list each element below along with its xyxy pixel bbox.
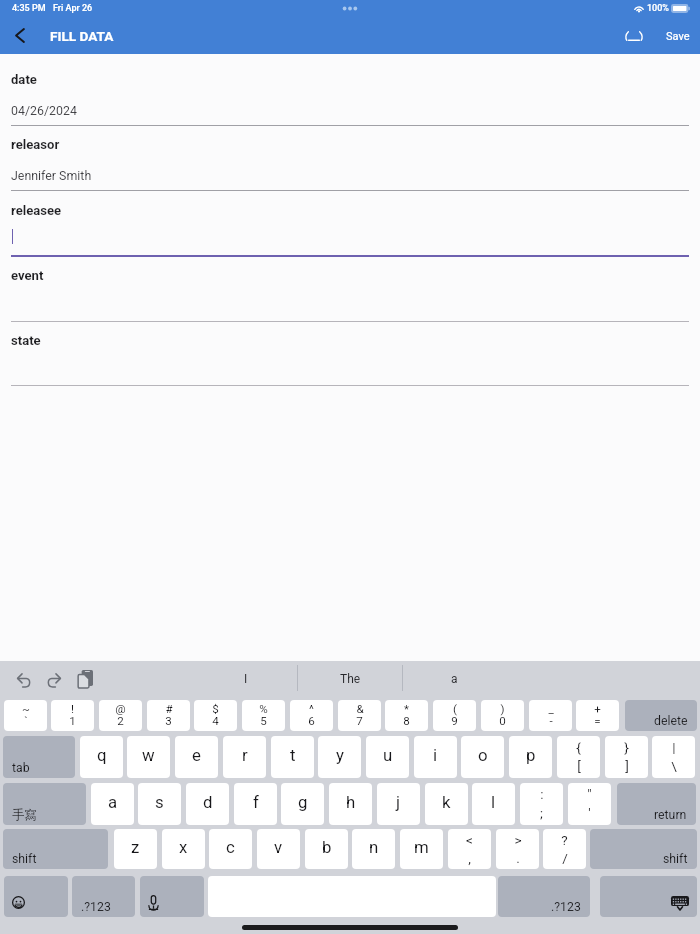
staticText: 手寫 <box>12 807 37 822</box>
button[interactable]: t <box>271 736 314 778</box>
button[interactable]: a <box>409 661 499 697</box>
button[interactable]: & <box>338 700 381 731</box>
button[interactable]: Paste <box>73 667 97 691</box>
button[interactable]: e <box>175 736 218 778</box>
button[interactable]: The <box>305 661 395 697</box>
staticText: 8 <box>403 714 410 728</box>
staticText: 4:35 PM <box>12 3 46 14</box>
button[interactable]: a <box>91 783 134 825</box>
button[interactable]: | <box>652 736 695 778</box>
staticText: state <box>11 333 41 348</box>
button[interactable]: date <box>11 72 689 129</box>
button[interactable]: c <box>209 829 252 869</box>
button[interactable]: g <box>281 783 324 825</box>
button[interactable]: tab <box>3 736 75 778</box>
button[interactable]: b <box>305 829 348 869</box>
staticText: v <box>274 837 283 857</box>
staticText: & <box>356 702 364 716</box>
button[interactable]: * <box>385 700 428 731</box>
staticText: shift <box>663 852 688 866</box>
button[interactable]: Hide keyboard <box>600 876 697 917</box>
button[interactable]: f <box>234 783 277 825</box>
staticText: b <box>322 837 332 857</box>
staticText: I <box>244 672 248 686</box>
button[interactable]: s <box>138 783 181 825</box>
button[interactable]: # <box>147 700 190 731</box>
staticText: releasee <box>11 203 62 218</box>
button[interactable]: ) <box>481 700 524 731</box>
button[interactable]: w <box>127 736 170 778</box>
button[interactable]: ~ <box>4 700 47 731</box>
button[interactable]: : <box>520 783 563 825</box>
button[interactable]: + <box>576 700 619 731</box>
button[interactable]: Hide keyboard <box>618 22 650 50</box>
button[interactable]: Dictation <box>140 876 204 917</box>
staticText: . <box>516 850 520 866</box>
button[interactable]: .?123 <box>72 876 135 917</box>
button[interactable]: Back <box>6 21 34 49</box>
button[interactable]: l <box>472 783 515 825</box>
button[interactable]: I <box>201 661 291 697</box>
staticText: ( <box>453 702 457 716</box>
button[interactable]: } <box>605 736 648 778</box>
staticText: Jennifer Smith <box>11 168 92 183</box>
staticText: 7 <box>356 714 363 728</box>
button[interactable]: u <box>366 736 409 778</box>
button[interactable]: n <box>352 829 395 869</box>
staticText: l <box>491 792 496 812</box>
other: Hide keyboard <box>671 896 689 910</box>
button[interactable]: ^ <box>290 700 333 731</box>
button[interactable]: shift <box>3 829 108 869</box>
button[interactable]: k <box>425 783 468 825</box>
staticText: 0 <box>499 714 506 728</box>
staticText: * <box>404 702 409 716</box>
button[interactable]: event <box>11 268 689 325</box>
button[interactable]: ? <box>543 829 586 869</box>
button[interactable]: releasee <box>11 203 689 259</box>
button[interactable]: $ <box>194 700 237 731</box>
button[interactable]: q <box>80 736 123 778</box>
button[interactable]: FILL DATA <box>44 22 120 50</box>
staticText: c <box>226 837 235 857</box>
button[interactable]: ! <box>51 700 94 731</box>
button[interactable]: z <box>114 829 157 869</box>
staticText: FILL DATA <box>50 28 114 44</box>
button[interactable]: y <box>318 736 361 778</box>
button[interactable]: > <box>496 829 539 869</box>
button[interactable]: return <box>617 783 696 825</box>
button[interactable]: releasor <box>11 137 689 194</box>
button[interactable]: h <box>329 783 372 825</box>
button[interactable]: Redo <box>42 668 66 692</box>
button[interactable]: v <box>257 829 300 869</box>
button[interactable]: Save <box>660 22 695 50</box>
button[interactable]: delete <box>625 700 697 731</box>
staticText: t <box>290 745 296 765</box>
staticText: w <box>142 745 155 765</box>
button[interactable]: ( <box>433 700 476 731</box>
button[interactable]: Emoji <box>4 876 68 917</box>
button[interactable]: o <box>461 736 504 778</box>
button[interactable]: 手寫 <box>3 783 86 825</box>
button[interactable]: state <box>11 333 689 389</box>
staticText: a <box>108 792 118 812</box>
button[interactable]: i <box>414 736 457 778</box>
button[interactable]: shift <box>590 829 697 869</box>
button[interactable]: m <box>400 829 443 869</box>
button[interactable]: Undo <box>12 668 36 692</box>
button[interactable]: p <box>509 736 552 778</box>
staticText: 2 <box>117 714 124 728</box>
staticText: ~ <box>22 702 30 716</box>
button[interactable]: @ <box>99 700 142 731</box>
button[interactable]: { <box>557 736 600 778</box>
button[interactable]: j <box>377 783 420 825</box>
button[interactable]: < <box>448 829 491 869</box>
button[interactable]: r <box>223 736 266 778</box>
button[interactable]: % <box>242 700 285 731</box>
button[interactable]: _ <box>529 700 572 731</box>
button[interactable]: x <box>162 829 205 869</box>
staticText: j <box>396 792 401 812</box>
button[interactable]: d <box>186 783 229 825</box>
button[interactable]: " <box>568 783 611 825</box>
button[interactable]: .?123 <box>498 876 590 917</box>
